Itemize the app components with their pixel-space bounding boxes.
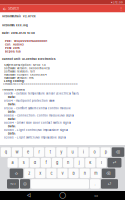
button[interactable]: More options — [119, 5, 123, 12]
staticText: x — [39, 171, 41, 175]
staticText: g — [56, 160, 58, 165]
staticText: ?123 — [10, 182, 16, 185]
button[interactable]: Recent apps — [91, 191, 101, 199]
staticText: c — [50, 171, 52, 175]
button[interactable]: Home — [57, 191, 67, 199]
staticText: Hardware number: 5K0907064 — [4, 73, 47, 76]
staticText: ⇧ — [14, 171, 18, 175]
button[interactable]: o — [89, 147, 100, 157]
staticText: ⌫ — [106, 171, 111, 175]
staticText: Bcpos: n/a — [5, 50, 21, 53]
staticText: Software version: 0K0907064CB — [4, 67, 50, 70]
staticText: ⌫ — [115, 150, 120, 154]
staticText: ▾ ▯ 12:30 — [111, 1, 123, 4]
button[interactable]: y — [56, 147, 66, 157]
button[interactable]: x — [35, 168, 45, 178]
staticText: 00856 - Connection: control module/No si… — [4, 114, 74, 117]
button[interactable]: Space — [31, 179, 89, 189]
staticText: 01304 - multipoint protection valve — [4, 99, 55, 102]
button[interactable]: ?123 — [7, 179, 19, 189]
staticText: 00394 - Driver side door contact switch … — [4, 121, 71, 124]
staticText: 00978 - Outside temperature sensor (Elec… — [4, 92, 79, 95]
button[interactable]: j — [74, 158, 84, 167]
button[interactable]: ⏎ — [101, 179, 118, 189]
button[interactable]: b — [69, 168, 79, 178]
staticText: Search — [8, 6, 19, 11]
button[interactable]: ⏎ — [107, 158, 121, 167]
staticText: a — [12, 160, 14, 165]
staticText: m — [94, 171, 97, 175]
staticText: ⋮ — [119, 6, 123, 11]
staticText: 0E1F872A1F000500000000000000000000000000… — [3, 83, 78, 86]
button[interactable]: w — [12, 147, 22, 157]
staticText: Data: — [8, 117, 16, 121]
staticText: Software revision: 1011 — [4, 70, 35, 73]
staticText: ⏎ — [107, 182, 111, 186]
button[interactable]: Back — [2, 5, 7, 12]
button[interactable]: v — [57, 168, 68, 178]
staticText: o — [94, 150, 96, 154]
button[interactable]: k — [85, 158, 95, 167]
staticText: 02085 - Light switch/No implausible sign… — [4, 136, 66, 139]
staticText: z — [28, 171, 30, 175]
button[interactable]: ⇧ — [10, 168, 23, 178]
button[interactable]: ⌫ — [112, 147, 124, 157]
staticText: n — [84, 171, 86, 175]
button[interactable]: c — [46, 168, 56, 178]
button[interactable]: u — [67, 147, 77, 157]
button[interactable]: q — [1, 147, 11, 157]
staticText: Cannot unit: UI-Central Electronics — [2, 57, 55, 61]
button[interactable]: e — [23, 147, 33, 157]
staticText: ☺ — [23, 182, 27, 186]
button[interactable]: i — [78, 147, 88, 157]
button[interactable]: a — [8, 158, 18, 167]
staticText: 01336 - Comfort system central control m… — [4, 107, 71, 110]
staticText: ▭ — [94, 193, 98, 198]
staticText: Cur: AudiA3 — [5, 43, 24, 46]
staticText: VCDSmm: xxx.log — [2, 24, 28, 27]
staticText: 02083 - Light control/No implausible sig… — [4, 128, 68, 132]
staticText: l — [101, 160, 102, 165]
button[interactable]: ☺ — [20, 179, 30, 189]
staticText: i — [83, 150, 84, 154]
staticText: q — [5, 150, 7, 154]
button[interactable]: s — [19, 158, 29, 167]
staticText: f — [45, 160, 46, 165]
staticText: VCDSmm.trail v2.07Cx — [2, 15, 36, 18]
staticText: k — [89, 160, 91, 165]
button[interactable]: p — [101, 147, 111, 157]
staticText: t — [50, 150, 51, 154]
staticText: PRE: WAUZZZ8V1GA000001 — [5, 39, 47, 43]
button[interactable]: r — [34, 147, 44, 157]
staticText: System description: NTXF 1.0 — [4, 63, 46, 67]
button[interactable]: Back — [24, 191, 34, 199]
button[interactable]: ⌫ — [102, 168, 115, 178]
staticText: Data: — [8, 103, 16, 106]
button[interactable]: g — [52, 158, 62, 167]
staticText: ◯ — [59, 193, 65, 198]
staticText: s — [23, 160, 25, 165]
staticText: Date: 2016-01-14 13:30 — [2, 31, 35, 35]
staticText: Hardware version: H15 — [4, 76, 34, 79]
staticText: r — [39, 150, 40, 154]
staticText: ⏎ — [112, 160, 116, 165]
staticText: e — [27, 150, 29, 154]
button[interactable]: h — [63, 158, 73, 167]
staticText: u — [71, 150, 73, 154]
staticText: v — [61, 171, 63, 175]
button[interactable]: d — [30, 158, 40, 167]
staticText: ◁ — [27, 193, 31, 198]
button[interactable]: f — [41, 158, 51, 167]
staticText: d — [34, 160, 36, 165]
button[interactable]: . — [90, 179, 100, 189]
staticText: Data: — [8, 110, 16, 113]
button[interactable]: l — [96, 158, 106, 167]
button[interactable]: n — [80, 168, 90, 178]
button[interactable]: z — [24, 168, 34, 178]
staticText: ← — [2, 6, 6, 11]
staticText: p — [105, 150, 107, 154]
button[interactable]: m — [91, 168, 101, 178]
button[interactable]: t — [45, 147, 55, 157]
staticText: Long coding: — [4, 79, 25, 83]
staticText: y — [60, 150, 62, 154]
